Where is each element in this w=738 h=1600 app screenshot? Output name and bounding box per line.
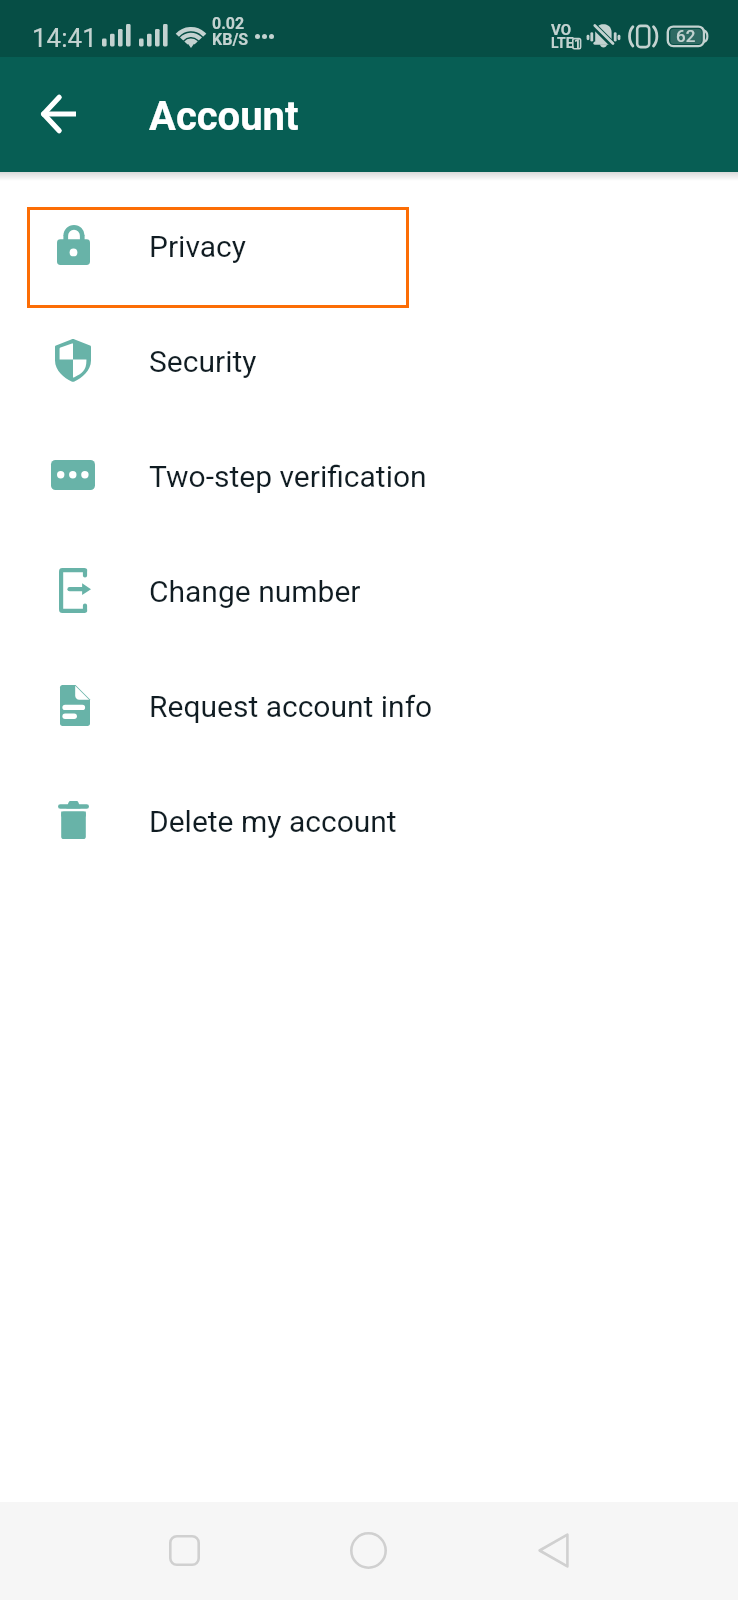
- staticText: LTE: [551, 35, 574, 51]
- staticText: VO: [551, 21, 572, 39]
- staticText: 62: [676, 26, 696, 46]
- staticText: Change number: [149, 574, 361, 609]
- button[interactable]: Security: [0, 315, 738, 430]
- button[interactable]: Request account info: [0, 660, 738, 775]
- staticText: Request account info: [149, 689, 433, 724]
- staticText: Account: [149, 93, 299, 140]
- button[interactable]: Delete my account: [0, 775, 738, 890]
- staticText: 14:41: [32, 23, 97, 53]
- staticText: 1: [574, 37, 581, 51]
- staticText: Privacy: [149, 229, 246, 264]
- button[interactable]: Back: [18, 74, 98, 154]
- staticText: KB/S: [212, 30, 249, 49]
- staticText: Delete my account: [149, 804, 397, 839]
- button[interactable]: Recent apps: [148, 1514, 221, 1587]
- staticText: 0.02: [212, 14, 245, 33]
- button[interactable]: Home: [332, 1514, 405, 1587]
- button[interactable]: Back: [517, 1514, 590, 1587]
- staticText: Two-step verification: [149, 459, 427, 494]
- button[interactable]: Change number: [0, 545, 738, 660]
- button[interactable]: Two-step verification: [0, 430, 738, 545]
- button[interactable]: Privacy: [0, 200, 738, 315]
- staticText: Security: [149, 344, 257, 379]
